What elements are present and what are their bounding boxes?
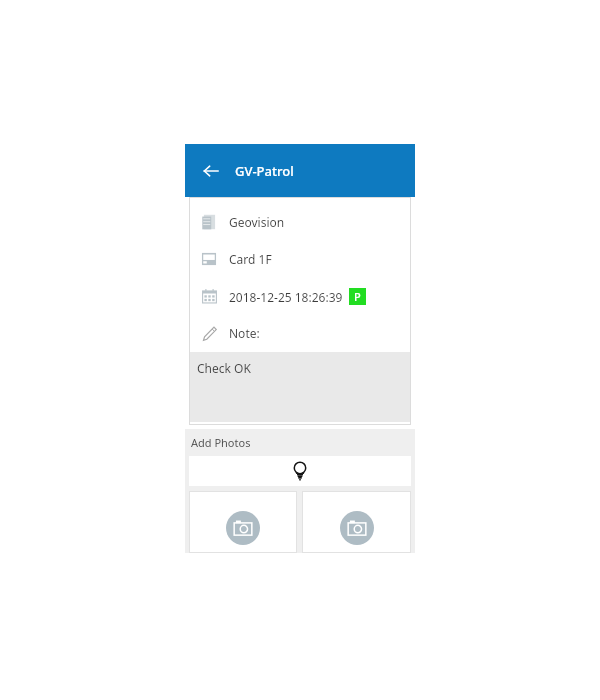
staticText: GV-Patrol	[235, 162, 294, 180]
staticText: 2018-12-25 18:26:39	[229, 289, 343, 305]
staticText: Geovision	[229, 214, 285, 230]
staticText: Note:	[229, 325, 260, 341]
button[interactable]: Add photo	[189, 491, 297, 553]
staticText: Check OK	[197, 360, 251, 376]
staticText: P	[354, 289, 361, 304]
button[interactable]: Check OK	[189, 352, 411, 422]
staticText: Add Photos	[191, 435, 251, 450]
staticText: Card 1F	[229, 251, 272, 267]
button[interactable]: Back	[197, 157, 225, 185]
button[interactable]: Tip	[189, 456, 411, 486]
button[interactable]: Add photo	[302, 491, 411, 553]
